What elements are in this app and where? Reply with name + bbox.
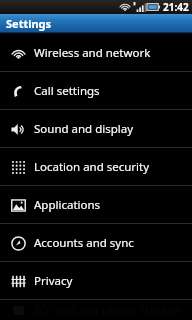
button[interactable]: Wireless and network <box>0 34 192 71</box>
button[interactable]: Sound and display <box>0 110 192 147</box>
staticText: Privacy <box>34 273 73 289</box>
staticText: Call settings <box>34 83 100 99</box>
button[interactable]: Accounts and sync <box>0 224 192 261</box>
staticText: Accounts and sync <box>34 235 134 251</box>
button[interactable]: Applications <box>0 186 192 223</box>
staticText: Applications <box>34 197 101 213</box>
button[interactable]: Call settings <box>0 72 192 109</box>
staticText: 21:42 <box>163 0 189 14</box>
staticText: Sound and display <box>34 121 134 137</box>
button[interactable]: Privacy <box>0 262 192 299</box>
staticText: Wireless and network <box>34 45 151 61</box>
staticText: Location and security <box>34 159 150 175</box>
button[interactable]: Location and security <box>0 148 192 185</box>
staticText: Settings <box>6 16 52 31</box>
